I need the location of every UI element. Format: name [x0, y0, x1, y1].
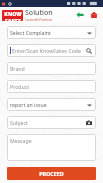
button[interactable]: Product	[7, 80, 96, 93]
button[interactable]: Message	[7, 134, 96, 161]
staticText: Select Complaint	[10, 29, 85, 36]
button[interactable]: PROCEED	[7, 167, 96, 180]
staticText: Enter/Scan KnowFakes Code	[12, 47, 85, 54]
button[interactable]: Back	[74, 9, 86, 21]
staticText: Brand	[10, 65, 93, 72]
staticText: report an issue	[10, 101, 85, 108]
staticText: KNOW	[4, 10, 22, 17]
staticText: FAKES	[5, 17, 21, 21]
staticText: Counterfeit Protection	[25, 18, 53, 22]
staticText: Message	[10, 137, 32, 144]
staticText: PROCEED	[39, 170, 64, 177]
other: Open dropdown	[85, 101, 93, 109]
button[interactable]: Home	[88, 9, 100, 21]
button[interactable]: Select Complaint	[7, 26, 96, 39]
button[interactable]: Enter/Scan KnowFakes Code	[7, 44, 96, 57]
button[interactable]: KnowFakes logo	[2, 10, 23, 21]
button[interactable]: Subject	[7, 116, 96, 129]
staticText: Subject	[10, 119, 85, 126]
other: Attach photo	[85, 119, 93, 127]
other: Scan code	[85, 47, 93, 55]
button[interactable]: report an issue	[7, 98, 96, 111]
other: Open dropdown	[85, 29, 93, 37]
staticText: Product	[10, 83, 93, 90]
button[interactable]: Brand	[7, 62, 96, 75]
staticText: Solution	[25, 8, 53, 18]
